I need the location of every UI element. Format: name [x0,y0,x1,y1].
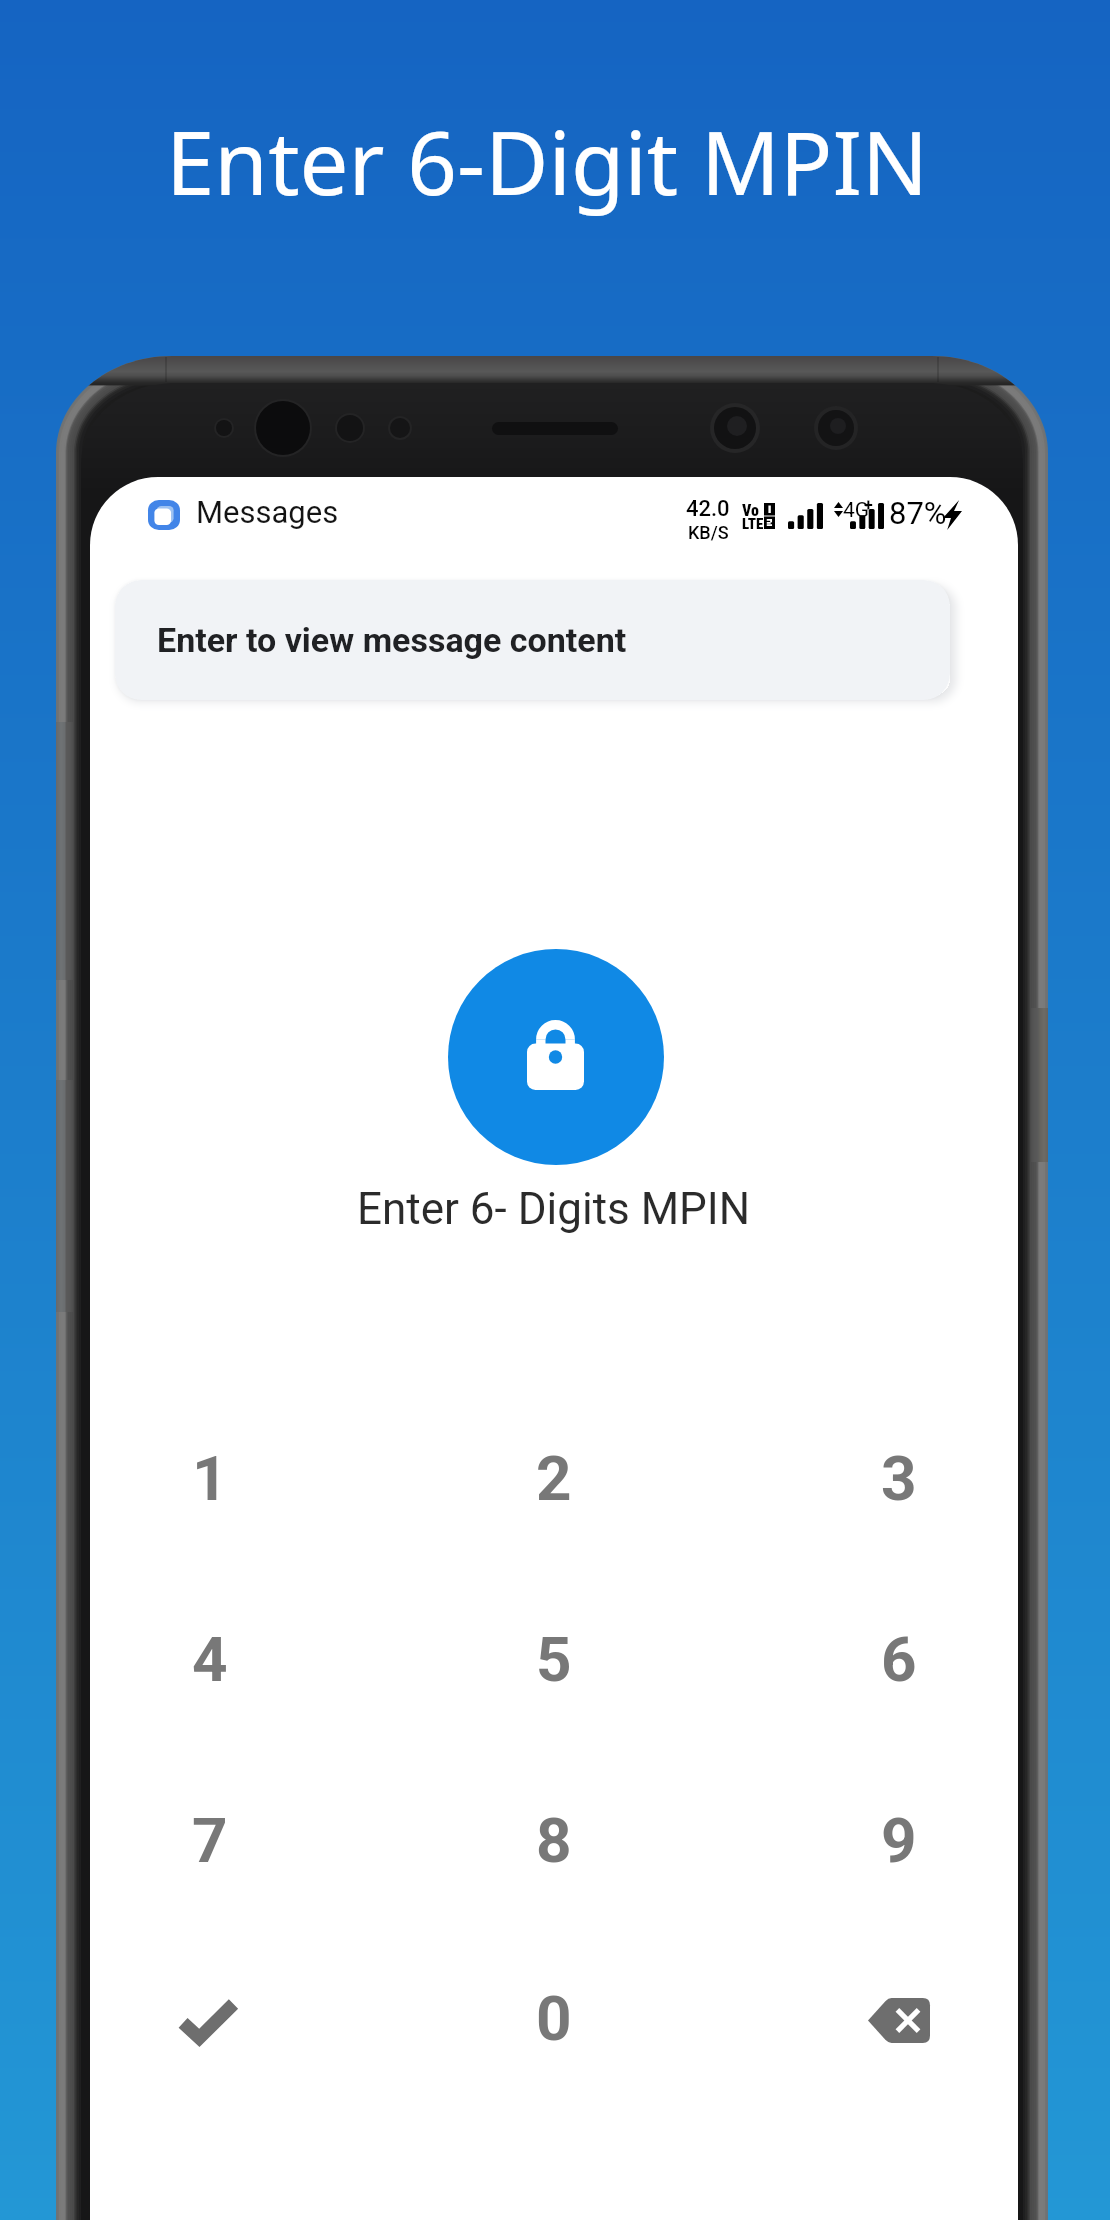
staticText: 4G [843,498,870,523]
staticText: LTE [742,515,764,533]
staticText: 6 [881,1623,917,1696]
staticText: 42.0 [686,496,730,522]
staticText: 7 [192,1804,228,1877]
staticText: 5 [536,1623,572,1696]
staticText: Messages [196,494,339,530]
button[interactable]: 6 [809,1569,989,1749]
button[interactable]: 8 [464,1750,644,1930]
staticText: 8 [536,1804,572,1877]
button[interactable]: 3 [809,1388,989,1568]
button[interactable]: 0 [464,1928,644,2108]
button[interactable]: 9 [809,1750,989,1930]
other: Confirm [180,1998,236,2042]
staticText: 0 [536,1982,572,2055]
staticText: 87% [889,495,947,531]
button[interactable]: Enter to view message content [115,580,950,700]
staticText: Enter 6-Digit MPIN [166,102,929,220]
staticText: Enter to view message content [157,620,627,660]
button[interactable]: 1 [120,1388,300,1568]
staticText: 9 [881,1804,917,1877]
staticText: 2 [536,1442,572,1515]
staticText: 3 [881,1442,917,1515]
button[interactable]: 5 [464,1569,644,1749]
button[interactable]: 2 [464,1388,644,1568]
button[interactable]: Confirm [120,1928,300,2108]
staticText: 4 [192,1623,228,1696]
other: Backspace [868,1998,930,2043]
staticText: Vo [742,501,759,520]
button[interactable]: 4 [120,1569,300,1749]
staticText: 1 [192,1442,228,1515]
button[interactable]: 7 [120,1750,300,1930]
staticText: KB/S [688,522,729,543]
button[interactable]: Backspace [809,1928,989,2108]
staticText: + [864,496,873,515]
staticText: Enter 6- Digits MPIN [357,1183,751,1235]
